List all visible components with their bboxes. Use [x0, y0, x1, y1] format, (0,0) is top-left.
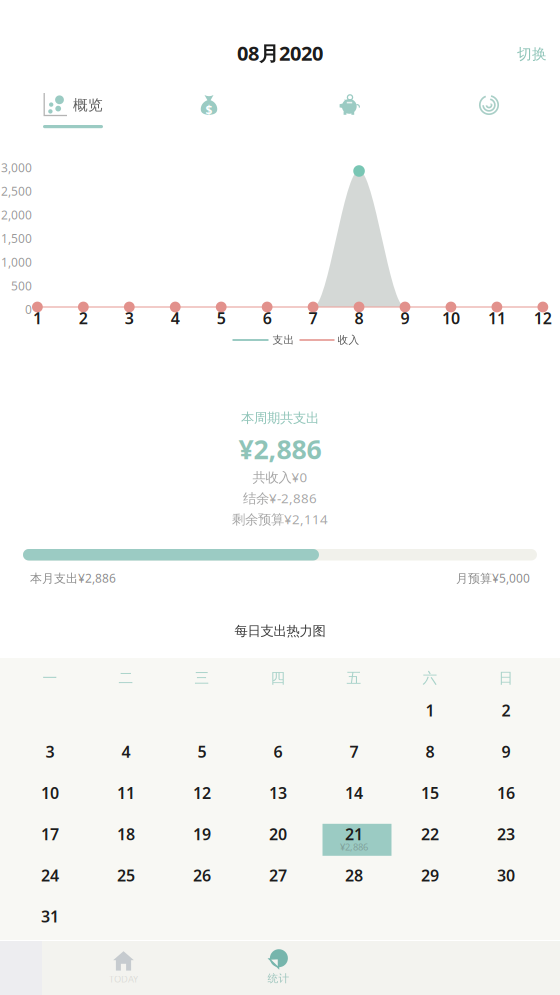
staticText: 五 [346, 669, 361, 687]
staticText: 三 [194, 669, 209, 687]
staticText: 21 [345, 823, 363, 845]
staticText: 24 [41, 865, 59, 886]
staticText: 20 [269, 823, 287, 845]
staticText: 概览 [73, 96, 103, 114]
staticText: 14 [345, 782, 363, 803]
staticText: 27 [269, 865, 287, 886]
staticText: 15 [421, 782, 439, 803]
staticText: 26 [193, 865, 211, 886]
staticText: 10 [442, 307, 460, 329]
staticText: 12 [534, 307, 552, 329]
staticText: 5 [217, 307, 226, 329]
staticText: 31 [41, 906, 59, 927]
staticText: 3,000 [1, 159, 32, 175]
button[interactable]: 统计 [201, 941, 356, 995]
staticText: 28 [345, 865, 363, 886]
staticText: 2 [501, 700, 510, 721]
staticText: 每日支出热力图 [234, 623, 325, 639]
staticText: 1 [425, 700, 434, 721]
staticText: 18 [117, 823, 135, 845]
staticText: 25 [117, 865, 135, 886]
staticText: 29 [421, 865, 439, 886]
staticText: 2 [79, 307, 88, 329]
staticText: 500 [11, 278, 32, 294]
staticText: 3 [45, 741, 54, 762]
staticText: 8 [355, 307, 364, 329]
staticText: 17 [41, 823, 59, 845]
staticText: 1,000 [1, 254, 32, 270]
staticText: 月预算¥5,000 [456, 570, 530, 586]
staticText: 30 [497, 865, 515, 886]
staticText: 一 [42, 669, 57, 687]
staticText: 本月支出¥2,886 [30, 570, 116, 586]
staticText: 8 [425, 741, 434, 762]
staticText: 剩余预算¥2,114 [232, 510, 328, 528]
staticText: 22 [421, 823, 439, 845]
staticText: $ [205, 102, 212, 118]
staticText: 13 [269, 782, 287, 803]
staticText: 11 [488, 307, 506, 329]
button[interactable]: TODAY [46, 941, 201, 995]
staticText: 2,000 [1, 207, 32, 223]
staticText: 统计 [267, 972, 289, 985]
staticText: 收入 [337, 333, 359, 346]
staticText: 6 [273, 741, 282, 762]
staticText: 10 [41, 782, 59, 803]
staticText: 9 [501, 741, 510, 762]
staticText: 9 [400, 307, 409, 329]
staticText: 1 [33, 307, 42, 329]
button[interactable]: 切换 [517, 44, 560, 64]
staticText: 6 [263, 307, 272, 329]
staticText: 08月2020 [237, 40, 323, 66]
staticText: 1,500 [1, 230, 32, 246]
staticText: 2,500 [1, 183, 32, 199]
staticText: 12 [193, 782, 211, 803]
staticText: 结余¥-2,886 [243, 489, 317, 507]
staticText: 16 [497, 782, 515, 803]
staticText: 日 [498, 669, 513, 687]
staticText: ¥2,886 [340, 841, 368, 853]
staticText: 3 [125, 307, 134, 329]
staticText: 4 [121, 741, 130, 762]
staticText: 11 [117, 782, 135, 803]
staticText: 六 [422, 669, 437, 687]
staticText: 四 [270, 669, 285, 687]
staticText: ¥2,886 [238, 431, 321, 467]
staticText: 7 [349, 741, 358, 762]
staticText: 本周期共支出 [241, 410, 319, 426]
staticText: TODAY [109, 973, 138, 985]
staticText: 0 [25, 301, 32, 317]
staticText: 4 [171, 307, 180, 329]
staticText: 二 [118, 669, 133, 687]
staticText: 23 [497, 823, 515, 845]
staticText: 19 [193, 823, 211, 845]
staticText: 切换 [517, 45, 547, 63]
staticText: 支出 [272, 333, 294, 346]
staticText: 7 [309, 307, 318, 329]
staticText: 共收入¥0 [252, 468, 307, 486]
staticText: 5 [197, 741, 206, 762]
